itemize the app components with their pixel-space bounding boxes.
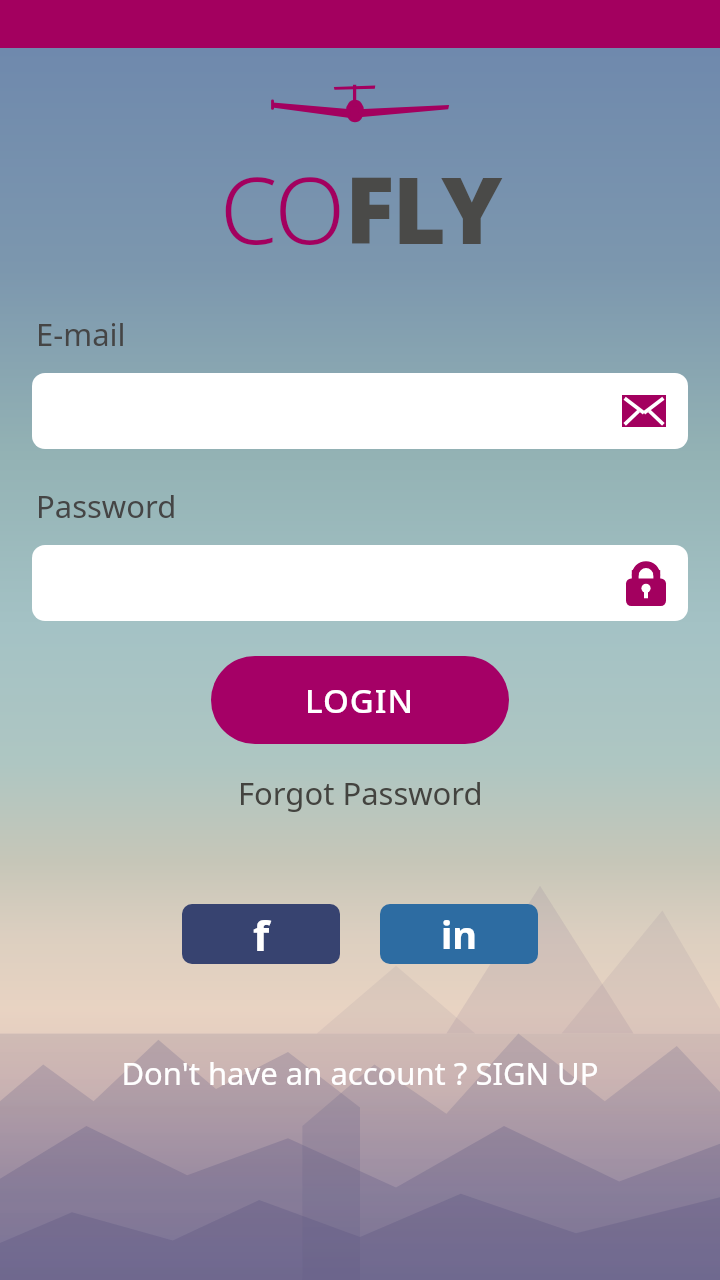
staticText: in <box>441 908 478 960</box>
button[interactable]: E-mail <box>32 373 688 449</box>
staticText: CO <box>220 146 345 271</box>
button[interactable]: Forgot Password <box>226 768 495 818</box>
button[interactable]: Sign in with LinkedIn <box>380 904 538 964</box>
staticText: FLY <box>345 146 501 271</box>
staticText: LOGIN <box>305 678 415 723</box>
staticText: Don't have an account ? SIGN UP <box>121 1052 599 1094</box>
button[interactable]: LOGIN <box>211 656 509 744</box>
other: E-mail <box>622 395 666 427</box>
other: Password <box>626 560 666 606</box>
staticText: Password <box>36 485 177 527</box>
staticText: Forgot Password <box>238 772 483 814</box>
staticText: E-mail <box>36 313 126 355</box>
button[interactable]: Sign in with Facebook <box>182 904 340 964</box>
button[interactable]: Don't have an account ? SIGN UP <box>105 1046 615 1100</box>
staticText: f <box>253 906 270 963</box>
button[interactable]: Password <box>32 545 688 621</box>
